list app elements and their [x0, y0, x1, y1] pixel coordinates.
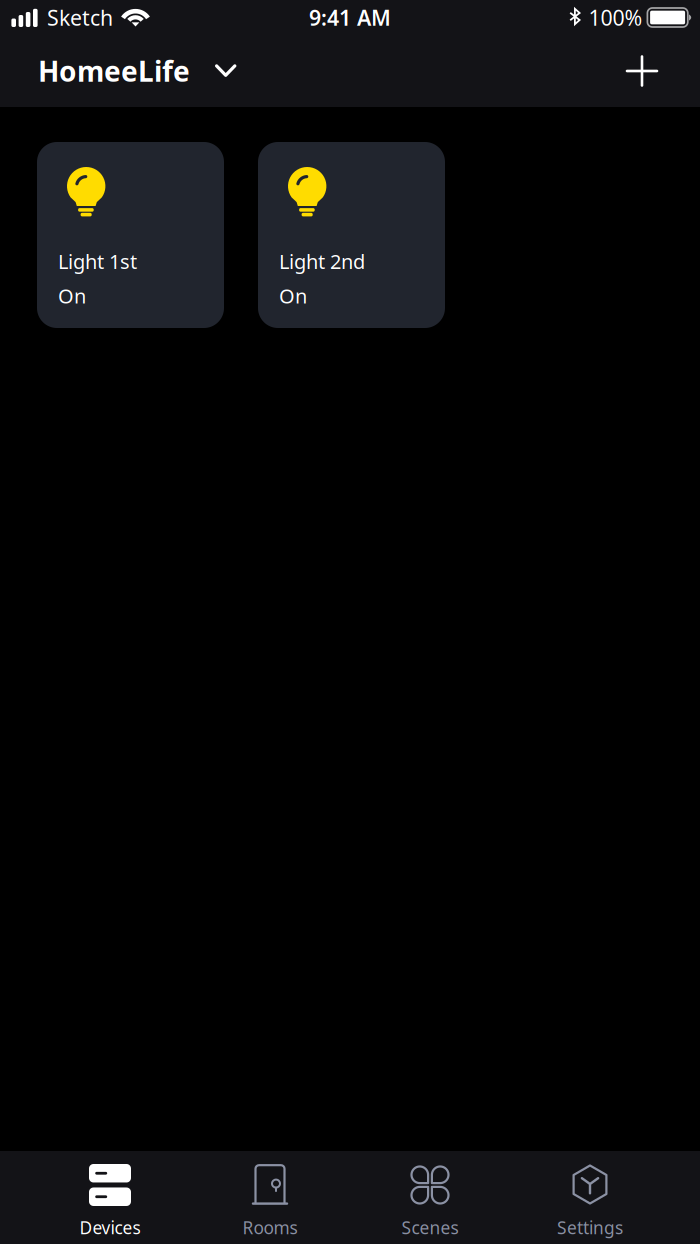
button[interactable]: Devices [30, 1146, 190, 1244]
staticText: 100% [588, 3, 642, 32]
staticText: Rooms [242, 1216, 297, 1239]
button[interactable]: Scenes [350, 1146, 510, 1244]
staticText: Sketch [47, 3, 113, 32]
button[interactable]: Light 2nd [258, 142, 445, 328]
button[interactable]: Add device [627, 48, 657, 93]
staticText: Settings [557, 1216, 623, 1239]
staticText: 9:41 AM [309, 3, 391, 32]
button[interactable]: Light 1st [37, 142, 224, 328]
staticText: Light 2nd [279, 248, 365, 274]
staticText: Light 1st [58, 248, 137, 274]
button[interactable]: Settings [510, 1146, 670, 1244]
staticText: Devices [79, 1216, 140, 1239]
staticText: HomeeLife [38, 52, 190, 90]
button[interactable]: HomeeLife [38, 42, 236, 100]
staticText: On [279, 282, 307, 309]
staticText: Scenes [401, 1216, 458, 1239]
button[interactable]: Rooms [190, 1146, 350, 1244]
staticText: On [58, 282, 86, 309]
